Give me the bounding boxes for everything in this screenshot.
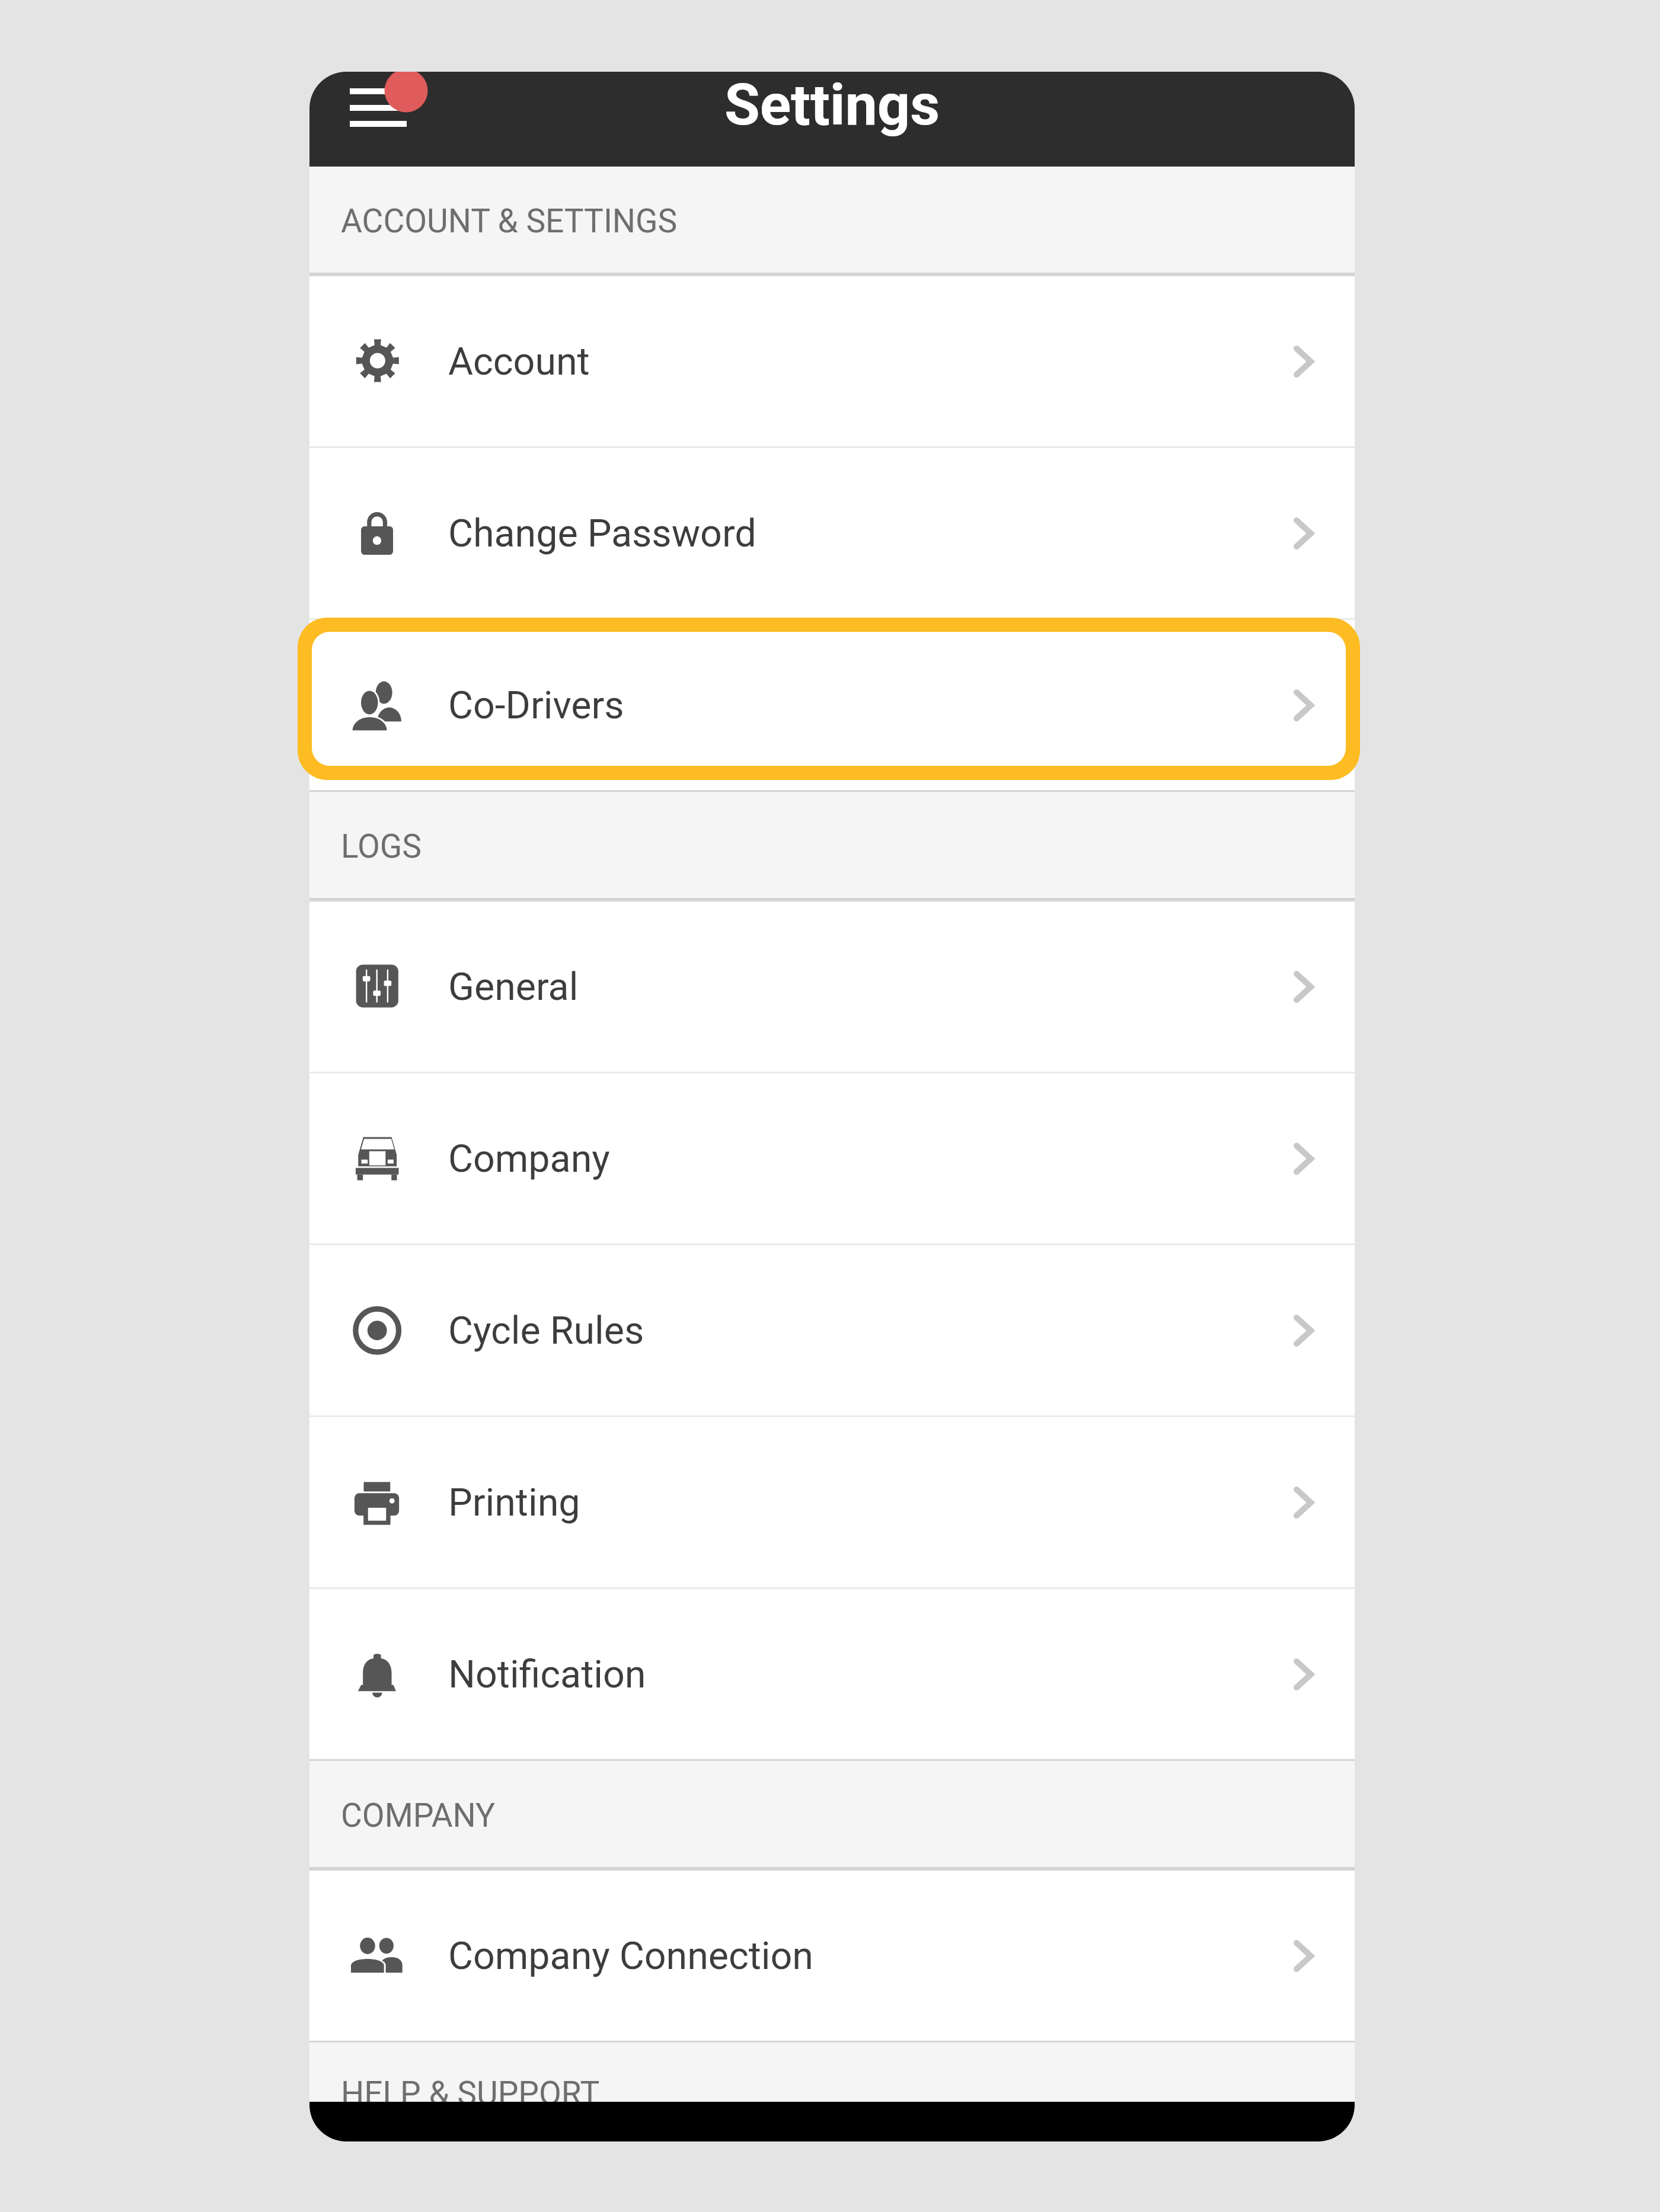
staticText: Printing [448,1480,580,1525]
button[interactable]: Cycle Rules [309,1245,1355,1415]
button[interactable]: Open navigation menu [333,72,452,167]
staticText: LOGS [341,827,422,865]
staticText: HELP & SUPPORT [341,2074,600,2112]
staticText: Company [448,1136,610,1181]
button[interactable]: Co-Drivers [309,620,1355,790]
staticText: Notification [448,1652,646,1697]
staticText: ACCOUNT & SETTINGS [341,202,678,240]
staticText: Co-Drivers [448,683,624,728]
staticText: Account [448,339,590,384]
button[interactable]: Company [309,1073,1355,1244]
staticText: General [448,964,579,1009]
staticText: Cycle Rules [448,1308,644,1353]
button[interactable]: Notification [309,1589,1355,1759]
staticText: Change Password [448,511,756,556]
staticText: Company Connection [448,1933,813,1978]
staticText: COMPANY [341,1797,496,1834]
button[interactable]: Account [309,276,1355,446]
button[interactable]: Company Connection [309,1871,1355,2041]
button[interactable]: General [309,902,1355,1072]
button[interactable]: Printing [309,1417,1355,1587]
staticText: Settings [724,72,940,139]
button[interactable]: Change Password [309,448,1355,618]
